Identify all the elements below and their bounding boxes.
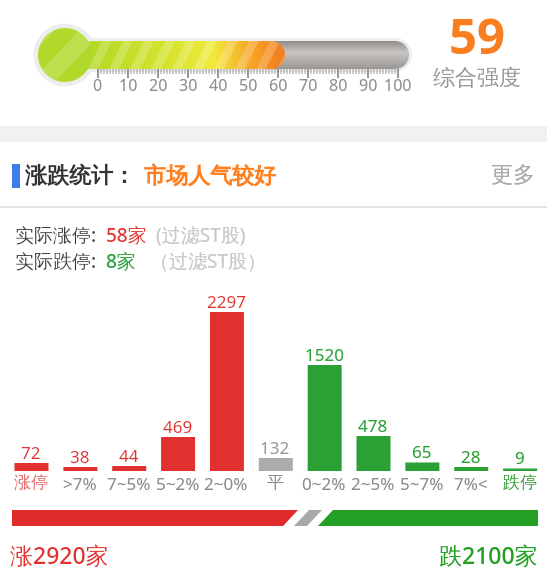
staticText: 70 <box>299 74 318 96</box>
staticText: 7~5% <box>107 472 151 495</box>
staticText: 44 <box>119 444 139 467</box>
staticText: 1520 <box>305 343 344 366</box>
staticText: 72 <box>21 441 41 464</box>
staticText: 132 <box>260 436 290 459</box>
staticText: 80 <box>329 74 348 96</box>
staticText: (过滤ST股) <box>156 222 246 248</box>
staticText: 0~2% <box>302 472 346 495</box>
button[interactable]: 更多 <box>484 160 542 190</box>
staticText: 更多 <box>491 161 535 189</box>
staticText: 100 <box>384 74 412 96</box>
staticText: 0 <box>93 74 103 96</box>
staticText: 7%< <box>454 472 488 495</box>
staticText: 60 <box>269 74 288 96</box>
staticText: 跌2100家 <box>439 539 538 570</box>
staticText: 28 <box>461 445 481 468</box>
staticText: >7% <box>63 472 97 495</box>
staticText: 8家 <box>106 248 136 274</box>
staticText: 5~2% <box>156 472 200 495</box>
staticText: 综合强度 <box>433 64 521 92</box>
staticText: 65 <box>412 440 432 463</box>
staticText: 10 <box>119 74 138 96</box>
staticText: 20 <box>149 74 168 96</box>
staticText: 90 <box>359 74 378 96</box>
staticText: 5~7% <box>400 472 444 495</box>
staticText: 跌停 <box>503 472 537 493</box>
staticText: 38 <box>70 445 90 468</box>
staticText: 58家 <box>106 222 147 248</box>
staticText: 2~5% <box>351 472 395 495</box>
staticText: 涨跌统计： <box>25 162 135 190</box>
staticText: 469 <box>163 415 193 438</box>
staticText: 2~0% <box>204 472 248 495</box>
staticText: 2297 <box>207 290 246 313</box>
staticText: 40 <box>209 74 228 96</box>
staticText: 涨停 <box>14 472 48 493</box>
staticText: 市场人气较好 <box>144 162 276 190</box>
staticText: 59 <box>449 2 506 69</box>
staticText: 30 <box>179 74 198 96</box>
staticText: （过滤ST股） <box>150 248 266 274</box>
staticText: 实际涨停: <box>15 222 97 248</box>
staticText: 478 <box>358 414 388 437</box>
staticText: 涨2920家 <box>10 539 109 570</box>
staticText: 平 <box>267 472 284 493</box>
staticText: 实际跌停: <box>15 248 97 274</box>
staticText: 50 <box>239 74 258 96</box>
staticText: 9 <box>515 446 525 469</box>
